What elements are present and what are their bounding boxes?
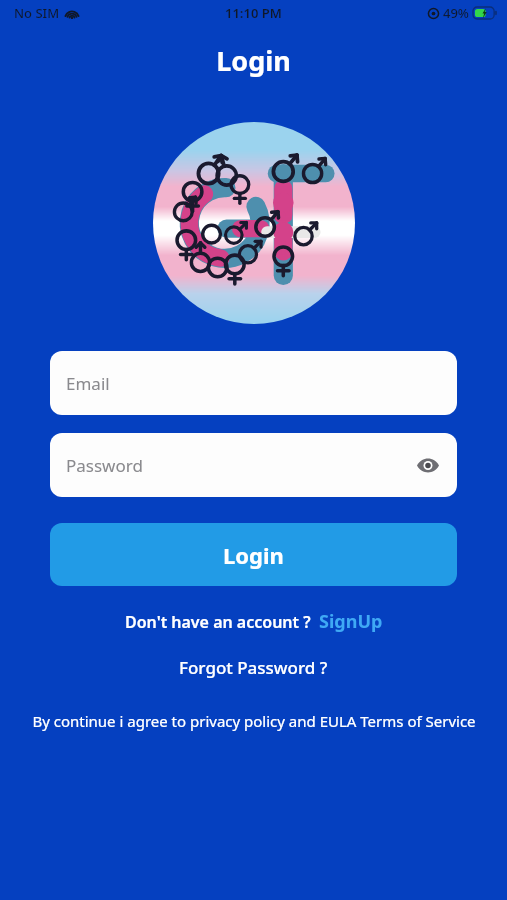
button[interactable]: Email — [50, 351, 457, 415]
staticText: Email — [66, 372, 110, 395]
staticText: By continue i agree to privacy policy an… — [32, 711, 476, 731]
button[interactable]: Login — [50, 523, 457, 586]
button[interactable]: Password — [50, 433, 457, 497]
staticText: Password — [66, 454, 143, 477]
staticText: Don't have an account ? — [125, 611, 311, 633]
staticText: No SIM — [14, 4, 60, 22]
button[interactable]: SignUp — [311, 609, 383, 634]
staticText: Login — [0, 42, 507, 79]
staticText: 49% — [443, 4, 469, 22]
staticText: Login — [223, 540, 284, 570]
button[interactable]: By continue i agree to privacy policy an… — [18, 711, 489, 731]
button[interactable]: Forgot Password ? — [179, 656, 328, 679]
staticText: SignUp — [319, 609, 383, 634]
staticText: 11:10 PM — [225, 4, 282, 22]
staticText: Forgot Password ? — [179, 656, 328, 679]
button[interactable]: Show password — [409, 446, 447, 484]
